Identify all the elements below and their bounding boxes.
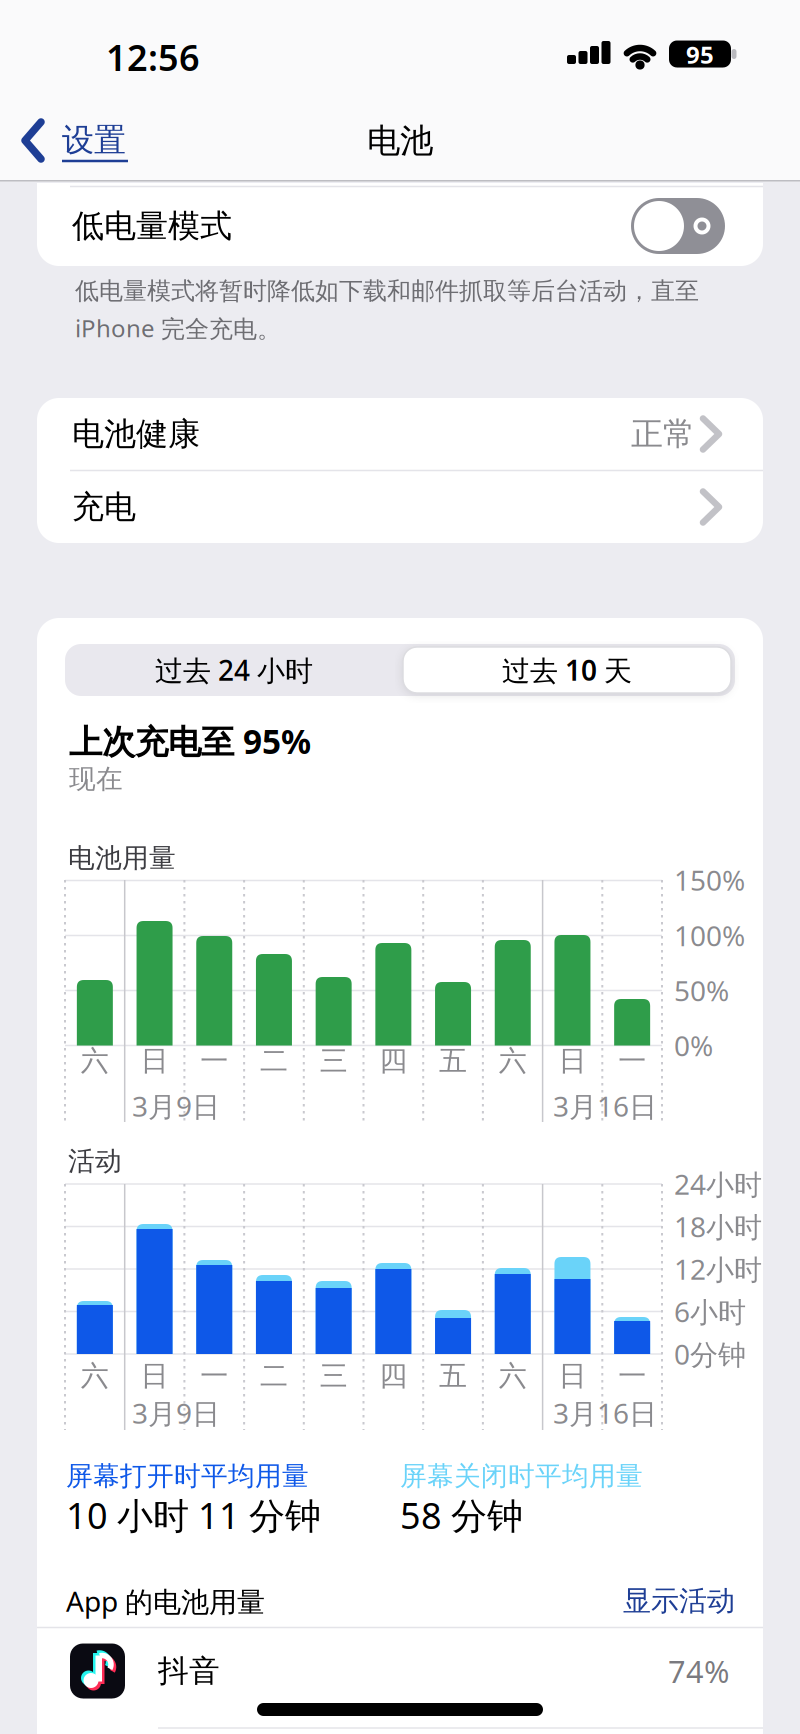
staticText: 设置: [62, 120, 126, 160]
staticText: 现在: [69, 763, 123, 795]
staticText: 日: [141, 1044, 169, 1078]
button[interactable]: 过去 10 天: [403, 647, 731, 693]
button[interactable]: 电池健康: [37, 398, 763, 470]
staticText: 6小时: [674, 1293, 746, 1330]
staticText: 24小时: [674, 1165, 762, 1203]
staticText: 150%: [674, 861, 745, 899]
button[interactable]: 充电: [37, 471, 763, 543]
staticText: 100%: [674, 917, 745, 954]
staticText: 低电量模式将暂时降低如下载和邮件抓取等后台活动，直至: [75, 276, 699, 306]
staticText: 18小时: [674, 1208, 762, 1245]
staticText: 六: [81, 1359, 109, 1393]
staticText: 0分钟: [674, 1335, 746, 1373]
staticText: 四: [379, 1044, 407, 1078]
staticText: 六: [499, 1044, 527, 1078]
staticText: 五: [439, 1044, 467, 1078]
staticText: 一: [200, 1044, 228, 1078]
staticText: 3月16日: [553, 1394, 657, 1432]
staticText: 五: [439, 1359, 467, 1393]
staticText: 上次充电至 95%: [69, 719, 311, 763]
button[interactable]: 低电量模式: [37, 186, 763, 266]
staticText: 三: [320, 1359, 348, 1393]
staticText: 12小时: [674, 1250, 762, 1288]
staticText: 3月9日: [132, 1087, 220, 1125]
staticText: 六: [81, 1044, 109, 1078]
staticText: 电池健康: [72, 414, 200, 454]
staticText: 充电: [72, 487, 136, 527]
staticText: 活动: [68, 1145, 122, 1177]
button[interactable]: 显示活动: [535, 1581, 735, 1621]
button[interactable]: 过去 24 小时: [69, 644, 399, 696]
staticText: 95: [686, 39, 714, 70]
staticText: 日: [558, 1359, 586, 1393]
staticText: 电池用量: [68, 842, 176, 874]
staticText: 一: [618, 1359, 646, 1393]
staticText: 抖音: [158, 1652, 220, 1690]
staticText: 0%: [674, 1027, 713, 1064]
staticText: 10 小时 11 分钟: [66, 1491, 321, 1539]
staticText: 屏幕打开时平均用量: [66, 1460, 309, 1492]
staticText: 一: [618, 1044, 646, 1078]
staticText: 3月9日: [132, 1394, 220, 1432]
staticText: 屏幕关闭时平均用量: [400, 1460, 643, 1492]
staticText: 一: [200, 1359, 228, 1393]
staticText: 二: [260, 1359, 288, 1393]
staticText: 正常: [631, 414, 695, 454]
button[interactable]: 抖音: [37, 1626, 763, 1716]
staticText: 50%: [674, 972, 729, 1009]
staticText: 四: [379, 1359, 407, 1393]
staticText: 58 分钟: [400, 1491, 523, 1539]
staticText: 日: [558, 1044, 586, 1078]
staticText: 低电量模式: [72, 206, 232, 246]
staticText: 电池: [367, 120, 433, 161]
staticText: 日: [141, 1359, 169, 1393]
staticText: 12:56: [106, 33, 200, 81]
staticText: iPhone 完全充电。: [75, 312, 281, 344]
staticText: App 的电池用量: [66, 1582, 265, 1620]
staticText: 二: [260, 1044, 288, 1078]
staticText: 过去 24 小时: [155, 651, 313, 689]
staticText: 3月16日: [553, 1087, 657, 1125]
staticText: 显示活动: [623, 1584, 735, 1618]
staticText: 六: [499, 1359, 527, 1393]
staticText: 74%: [668, 1651, 729, 1691]
button[interactable]: 设置: [0, 0, 800, 1734]
staticText: 过去 10 天: [502, 651, 632, 689]
staticText: 三: [320, 1044, 348, 1078]
